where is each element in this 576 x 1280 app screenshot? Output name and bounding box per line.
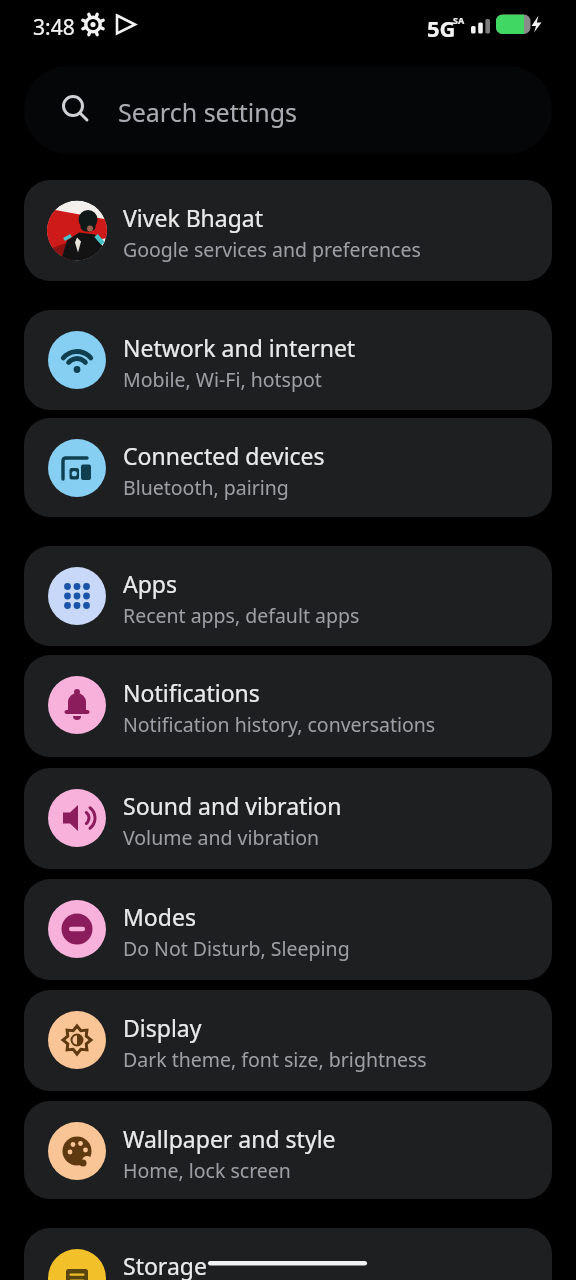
staticText: Network and internet <box>123 332 356 363</box>
staticText: Vivek Bhagat <box>123 202 264 233</box>
staticText: SA <box>453 14 465 26</box>
button[interactable]: Apps <box>24 546 552 646</box>
staticText: Bluetooth, pairing <box>123 474 289 501</box>
staticText: Do Not Disturb, Sleeping <box>123 935 350 962</box>
button[interactable]: Connected devices <box>24 418 552 517</box>
button[interactable]: Wallpaper and style <box>24 1101 552 1199</box>
staticText: Modes <box>123 901 196 932</box>
button[interactable]: Vivek Bhagat <box>24 180 552 281</box>
staticText: 3:48 <box>33 13 75 42</box>
button[interactable]: Sound and vibration <box>24 768 552 869</box>
staticText: Google services and preferences <box>123 236 421 263</box>
staticText: Storage <box>123 1250 207 1280</box>
staticText: Dark theme, font size, brightness <box>123 1046 427 1073</box>
staticText: Notification history, conversations <box>123 711 436 738</box>
staticText: Notifications <box>123 677 260 708</box>
staticText: Apps <box>123 568 178 599</box>
button[interactable]: Display <box>24 990 552 1091</box>
button[interactable]: Notifications <box>24 655 552 757</box>
button[interactable]: Network and internet <box>24 310 552 410</box>
staticText: 5G <box>427 13 456 43</box>
staticText: Sound and vibration <box>123 790 342 821</box>
button[interactable]: Search settings <box>24 66 552 154</box>
staticText: Volume and vibration <box>123 824 319 851</box>
button[interactable]: Storage <box>24 1228 552 1280</box>
staticText: Mobile, Wi-Fi, hotspot <box>123 366 322 393</box>
staticText: Recent apps, default apps <box>123 602 360 629</box>
button[interactable]: Modes <box>24 879 552 980</box>
staticText: Wallpaper and style <box>123 1123 336 1154</box>
staticText: Home, lock screen <box>123 1157 291 1184</box>
staticText: Connected devices <box>123 440 325 471</box>
staticText: Search settings <box>118 95 298 129</box>
staticText: Display <box>123 1012 202 1043</box>
